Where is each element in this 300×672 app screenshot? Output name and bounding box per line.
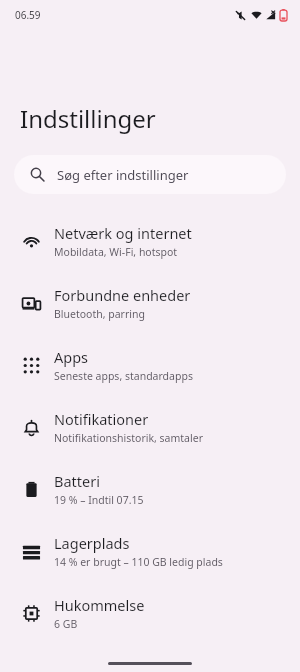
button[interactable]: Batteri	[0, 458, 300, 520]
staticText: 6 GB	[54, 617, 78, 631]
staticText: Apps	[54, 347, 89, 367]
button[interactable]: Søg efter indstillinger	[14, 155, 286, 194]
staticText: 06.59	[15, 8, 41, 22]
staticText: Lagerplads	[54, 533, 130, 553]
staticText: Notifikationer	[54, 409, 149, 429]
button[interactable]: Forbundne enheder	[0, 272, 300, 334]
staticText: Mobildata, Wi-Fi, hotspot	[54, 245, 178, 259]
staticText: Batteri	[54, 471, 100, 491]
staticText: Indstillinger	[20, 102, 156, 135]
button[interactable]: Apps	[0, 334, 300, 396]
button[interactable]: Lagerplads	[0, 520, 300, 582]
staticText: Bluetooth, parring	[54, 307, 145, 321]
button[interactable]: Hukommelse	[0, 582, 300, 644]
staticText: 19 % – Indtil 07.15	[54, 493, 144, 507]
staticText: Notifikationshistorik, samtaler	[54, 431, 203, 445]
staticText: Hukommelse	[54, 595, 145, 615]
staticText: 14 % er brugt – 110 GB ledig plads	[54, 555, 223, 569]
staticText: Netværk og internet	[54, 223, 192, 243]
staticText: Søg efter indstillinger	[57, 166, 189, 184]
staticText: Forbundne enheder	[54, 285, 191, 305]
button[interactable]: Notifikationer	[0, 396, 300, 458]
button[interactable]: Netværk og internet	[0, 210, 300, 272]
staticText: Seneste apps, standardapps	[54, 369, 193, 383]
